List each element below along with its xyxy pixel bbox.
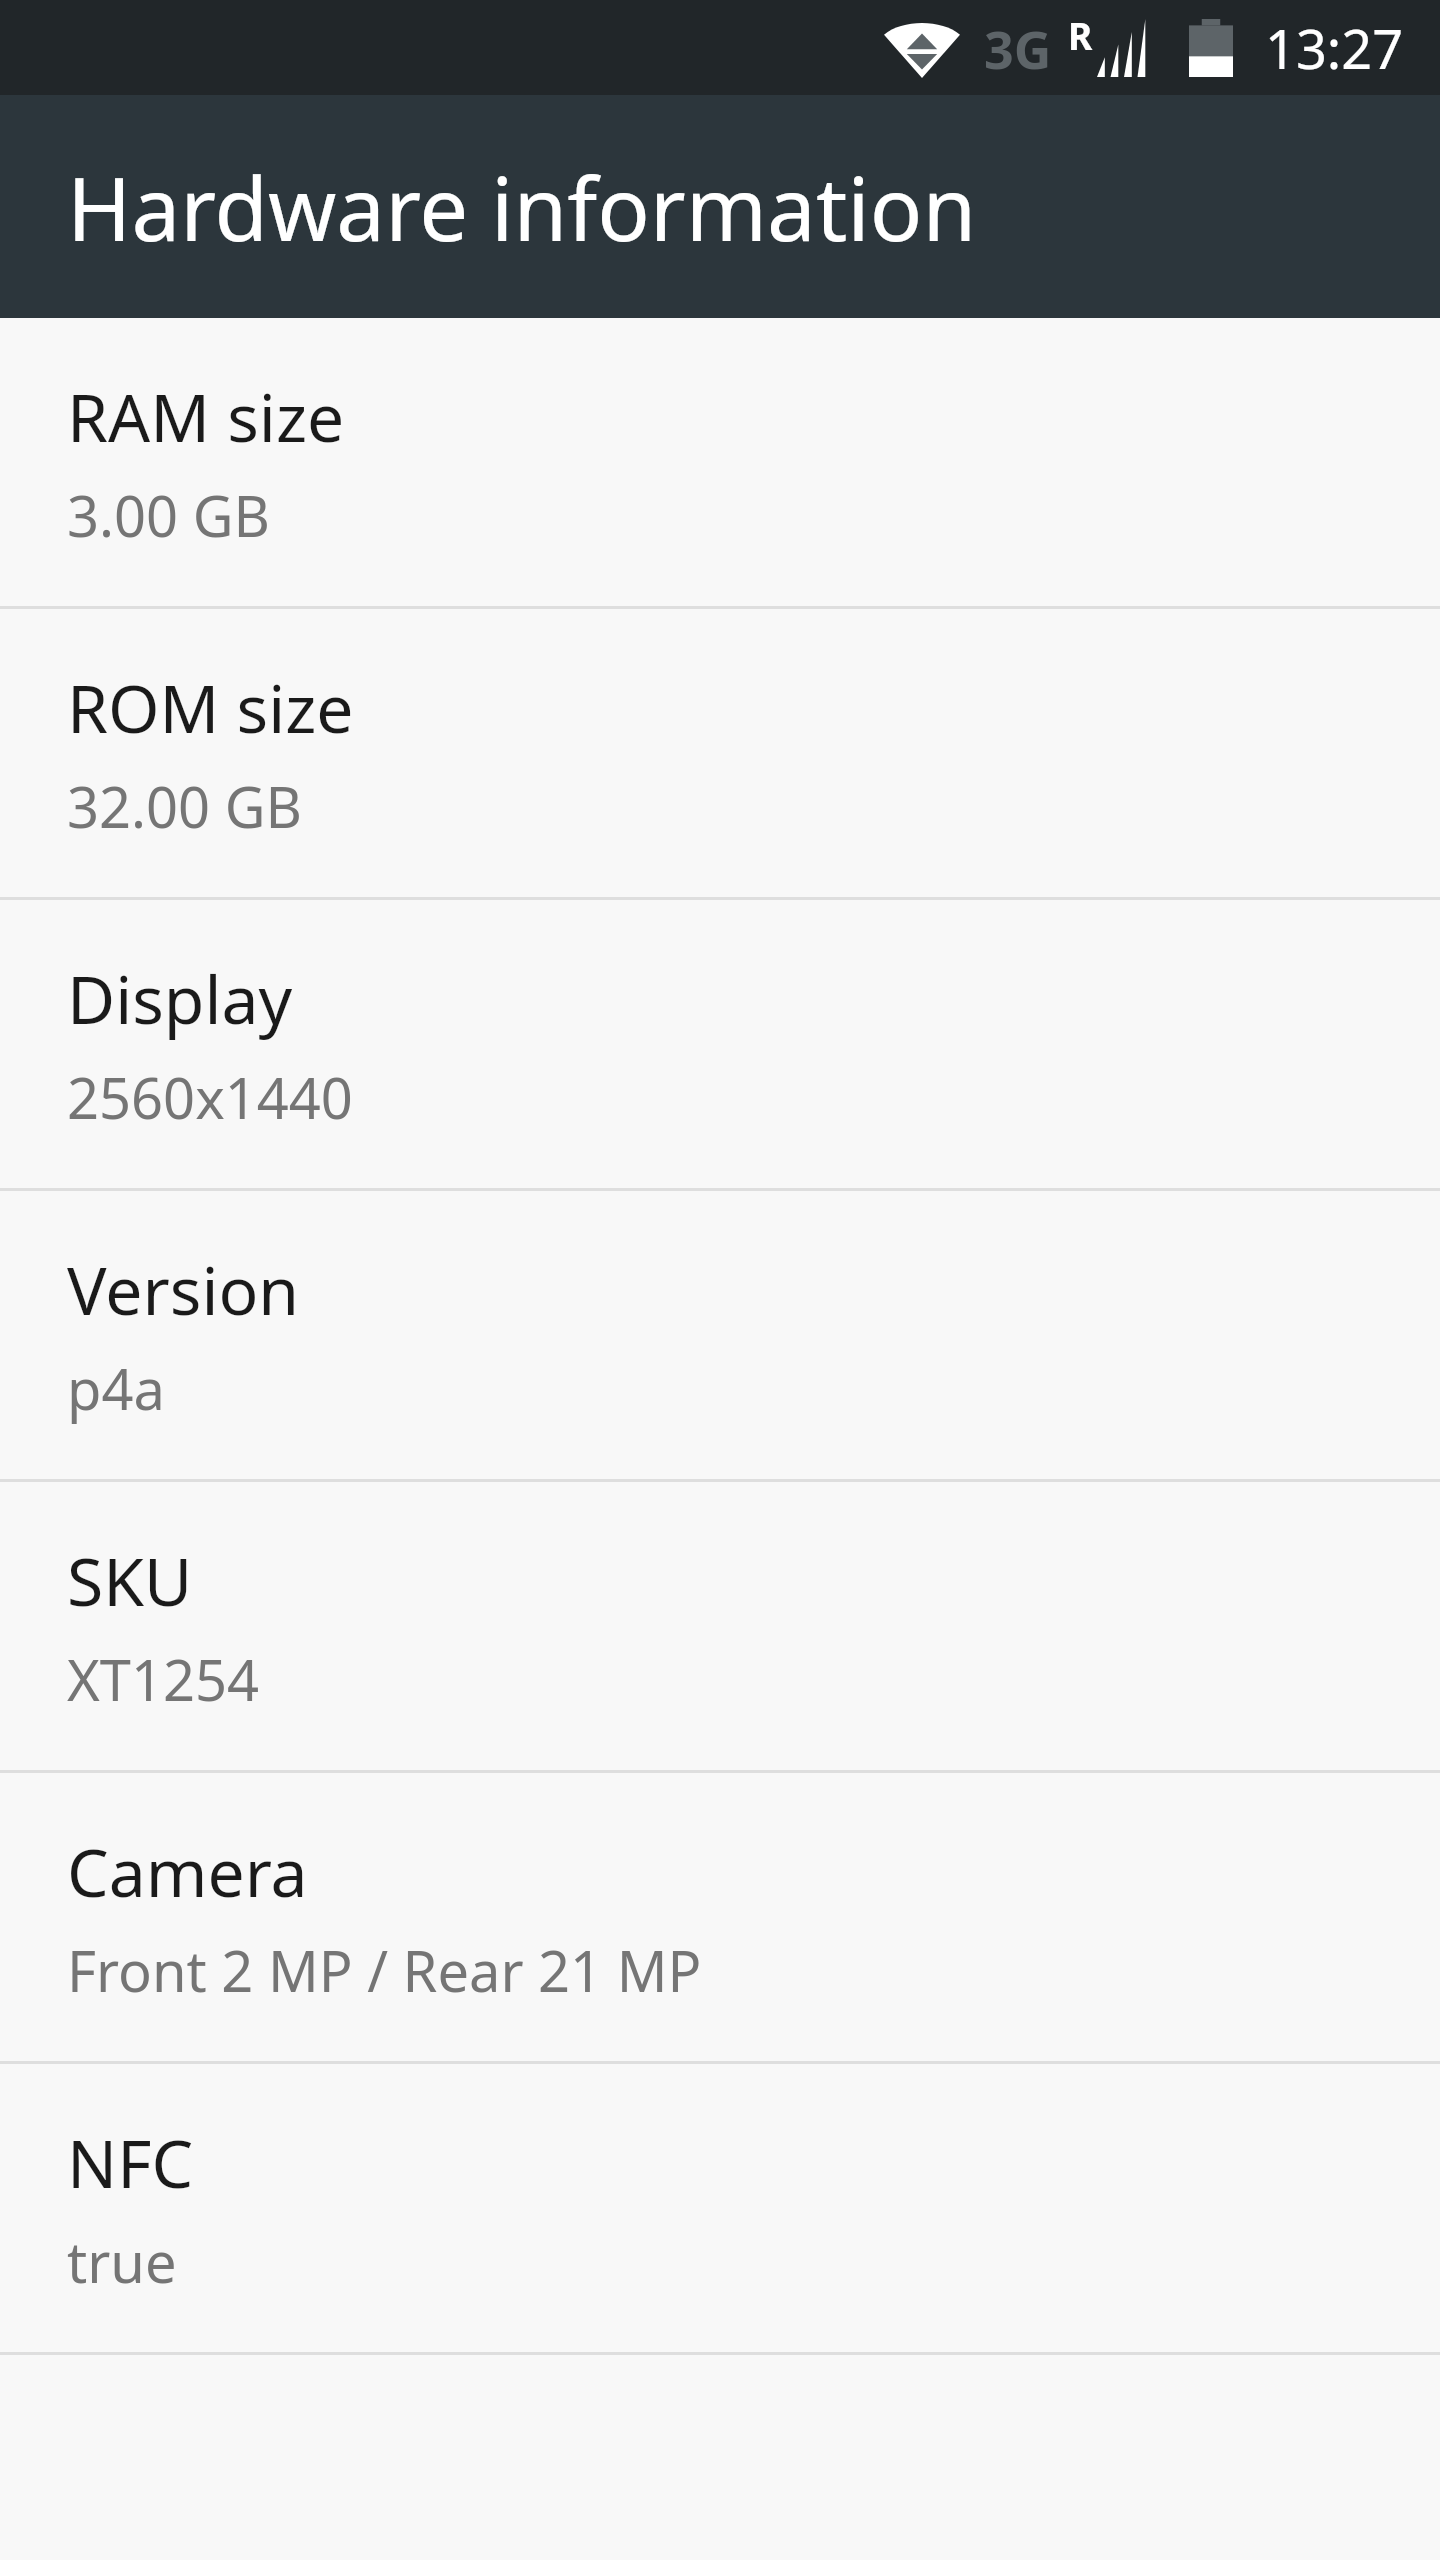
- staticText: RAM size: [67, 371, 345, 461]
- button[interactable]: Display: [0, 900, 1440, 1188]
- staticText: Front 2 MP / Rear 21 MP: [67, 1932, 702, 2008]
- staticText: Version: [67, 1244, 300, 1334]
- staticText: 3.00 GB: [67, 477, 270, 553]
- button[interactable]: ROM size: [0, 609, 1440, 897]
- button[interactable]: Version: [0, 1191, 1440, 1479]
- staticText: ROM size: [67, 662, 354, 752]
- staticText: R: [1068, 10, 1093, 60]
- button[interactable]: SKU: [0, 1482, 1440, 1770]
- staticText: p4a: [67, 1350, 165, 1426]
- other: Wi-Fi: [884, 18, 960, 78]
- staticText: 32.00 GB: [67, 768, 302, 844]
- staticText: Hardware information: [67, 148, 977, 266]
- button[interactable]: Camera: [0, 1773, 1440, 2061]
- button[interactable]: NFC: [0, 2064, 1440, 2352]
- other: Battery: [1189, 19, 1233, 77]
- staticText: NFC: [67, 2117, 194, 2207]
- staticText: Display: [67, 953, 293, 1043]
- staticText: 2560x1440: [67, 1059, 353, 1135]
- button[interactable]: RAM size: [0, 318, 1440, 606]
- staticText: Camera: [67, 1826, 308, 1916]
- staticText: true: [67, 2223, 177, 2299]
- staticText: XT1254: [67, 1641, 260, 1717]
- staticText: SKU: [67, 1535, 193, 1625]
- staticText: 13:27: [1265, 11, 1404, 85]
- staticText: 3G: [984, 13, 1052, 84]
- other: Mobile signal: [1097, 19, 1151, 77]
